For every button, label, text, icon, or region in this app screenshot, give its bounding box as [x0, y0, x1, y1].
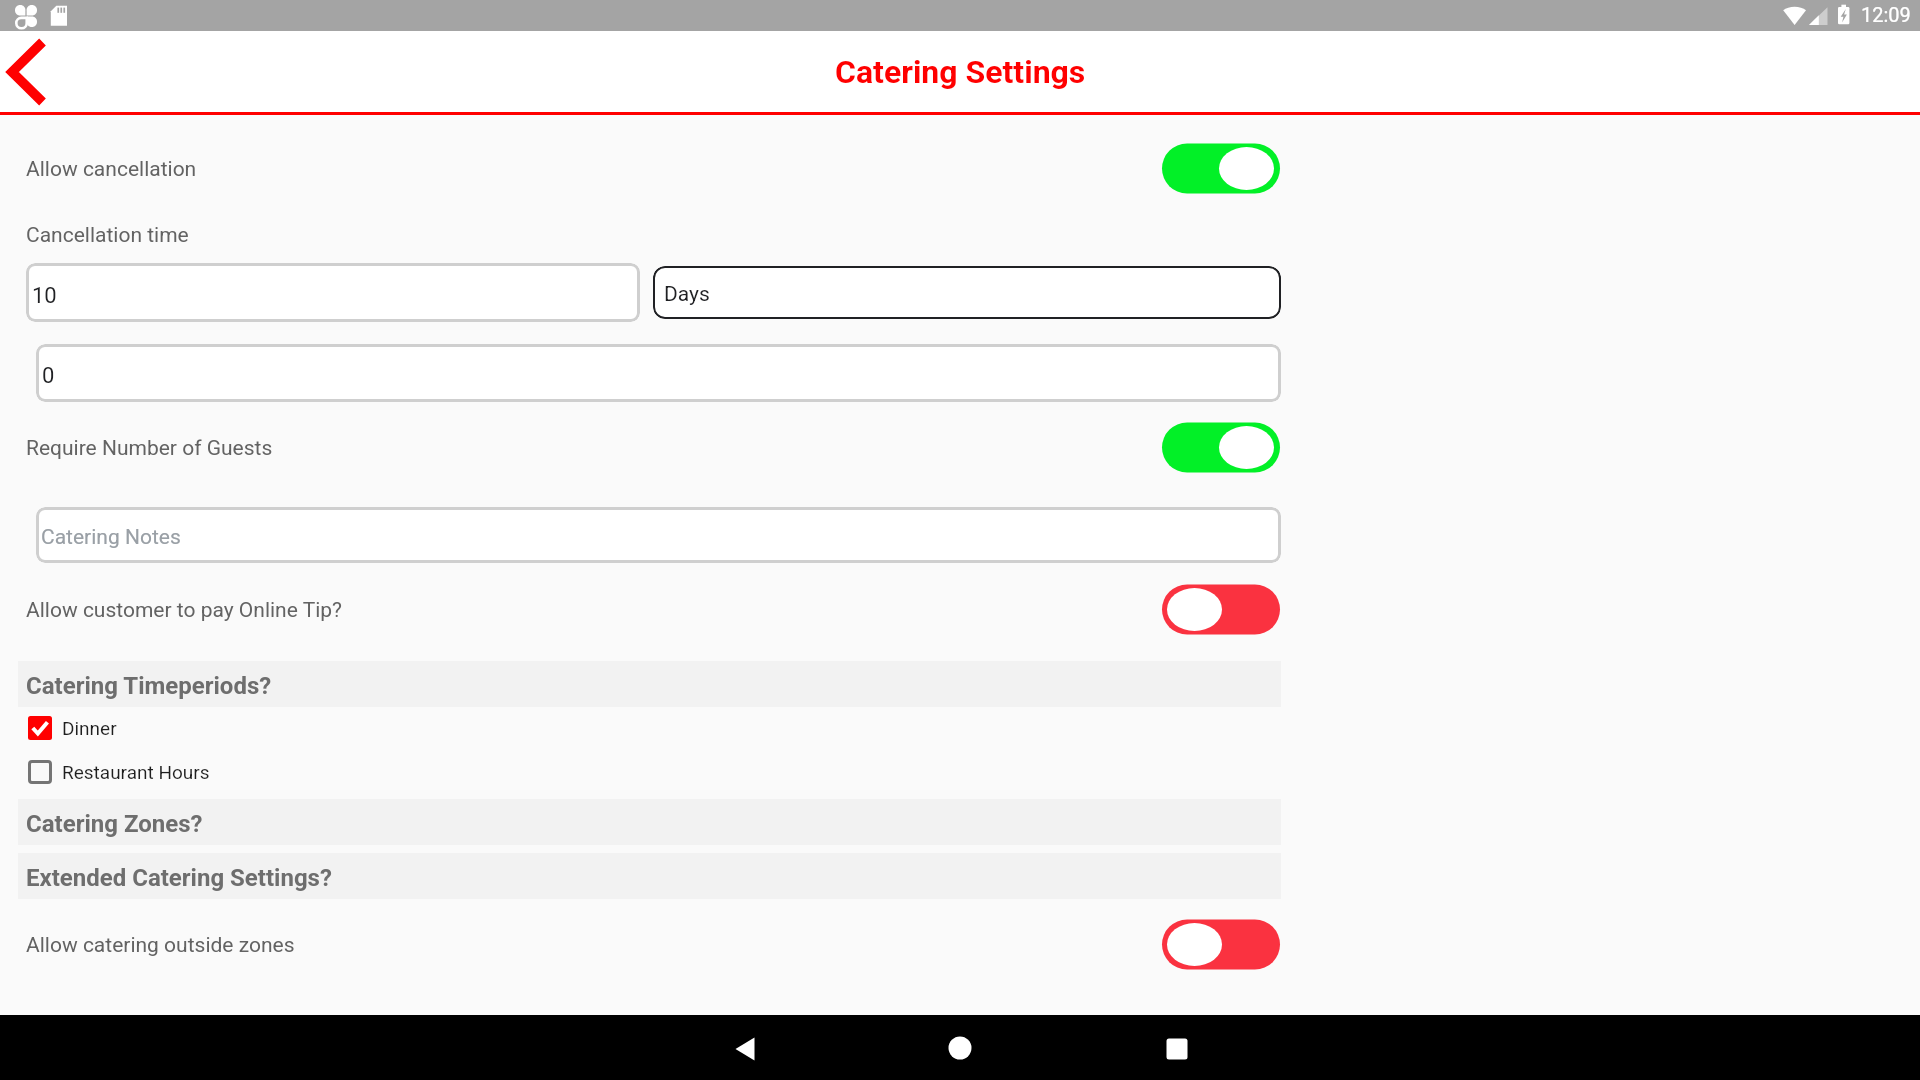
button[interactable]: Dinner [0, 712, 1261, 744]
button[interactable]: Switch off [1162, 584, 1280, 635]
staticText: Catering Timeperiods? [26, 672, 272, 700]
button[interactable]: 0 [36, 344, 1281, 402]
staticText: Cancellation time [26, 223, 189, 248]
button[interactable]: Back [685, 1015, 805, 1080]
staticText: Catering Notes [41, 525, 181, 550]
button[interactable]: Catering Timeperiods? [18, 661, 1281, 707]
button[interactable]: Navigate back [0, 31, 62, 112]
staticText: 10 [32, 283, 57, 309]
button[interactable]: Home [900, 1015, 1020, 1080]
button[interactable]: Switch on [1162, 143, 1280, 194]
staticText: Restaurant Hours [62, 761, 210, 783]
staticText: Allow catering outside zones [26, 933, 295, 958]
staticText: Days [664, 282, 710, 307]
button[interactable]: Switch off [1162, 919, 1280, 970]
button[interactable]: Catering Zones? [18, 799, 1281, 845]
button[interactable]: Restaurant Hours [0, 756, 1261, 788]
staticText: Catering Settings [835, 53, 1086, 91]
staticText: Catering Zones? [26, 810, 203, 838]
staticText: 0 [42, 363, 55, 389]
staticText: Allow cancellation [26, 157, 197, 182]
button[interactable]: Catering Notes [36, 507, 1281, 563]
staticText: 12:09 [1861, 3, 1911, 26]
button[interactable]: Switch on [1162, 422, 1280, 473]
button[interactable]: Extended Catering Settings? [18, 853, 1281, 899]
staticText: Dinner [62, 717, 117, 739]
button[interactable]: Days [653, 266, 1281, 319]
staticText: Extended Catering Settings? [26, 864, 332, 892]
staticText: Allow customer to pay Online Tip? [26, 598, 343, 623]
staticText: Require Number of Guests [26, 436, 273, 461]
button[interactable]: 10 [26, 263, 640, 322]
button[interactable]: Recent apps [1117, 1015, 1237, 1080]
